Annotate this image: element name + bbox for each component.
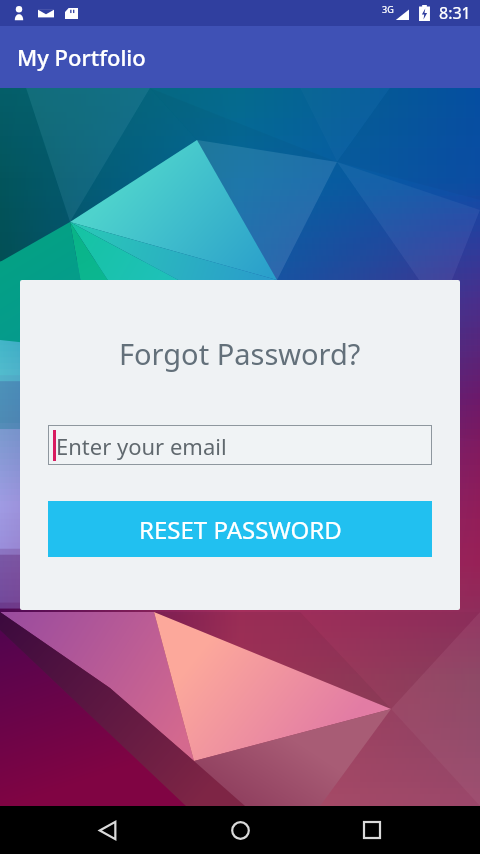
staticText: RESET PASSWORD	[139, 513, 342, 546]
button[interactable]: RESET PASSWORD	[48, 501, 432, 557]
staticText: My Portfolio	[17, 42, 146, 72]
button[interactable]: My Portfolio	[0, 26, 480, 88]
staticText: Forgot Password?	[119, 334, 361, 373]
staticText: 8:31	[439, 2, 471, 24]
button[interactable]: Enter your email	[48, 425, 432, 465]
button[interactable]: Recents	[348, 806, 396, 854]
button[interactable]: Back	[84, 806, 132, 854]
button[interactable]: Home	[216, 806, 264, 854]
staticText: 3G	[382, 3, 394, 15]
staticText: Enter your email	[56, 431, 227, 461]
